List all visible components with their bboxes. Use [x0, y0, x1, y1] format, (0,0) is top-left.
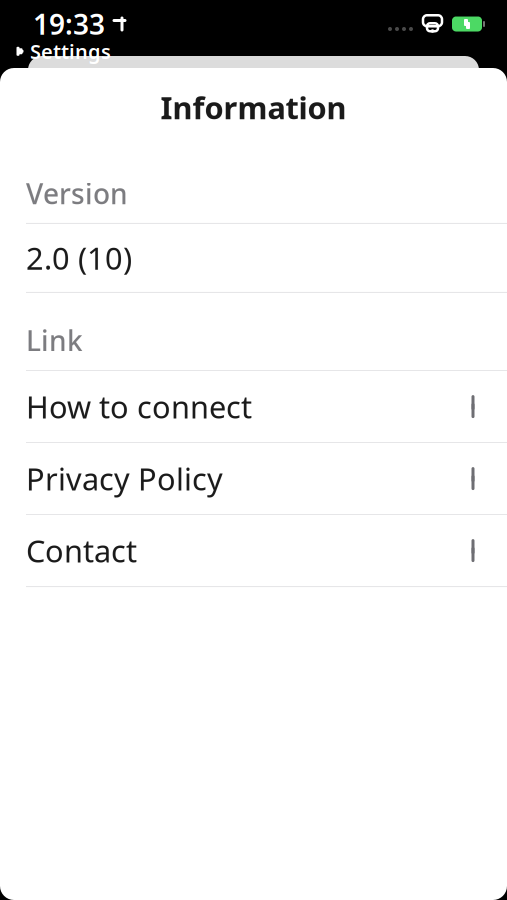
staticText: Privacy Policy	[26, 458, 223, 499]
staticText: Information	[160, 87, 346, 128]
button[interactable]: Settings	[0, 38, 111, 65]
staticText: Version	[26, 175, 128, 212]
staticText: Settings	[30, 38, 111, 65]
button[interactable]: Privacy Policy	[0, 443, 507, 514]
staticText: 19:33	[33, 5, 105, 43]
button[interactable]: Contact	[0, 515, 507, 586]
button[interactable]: How to connect	[0, 371, 507, 442]
staticText: Contact	[26, 530, 137, 571]
staticText: Link	[26, 322, 83, 359]
staticText: How to connect	[26, 386, 252, 427]
staticText: 2.0 (10)	[26, 237, 132, 278]
